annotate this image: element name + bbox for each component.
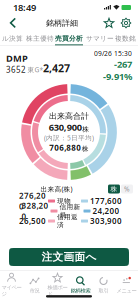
staticText: 株 bbox=[82, 145, 89, 153]
staticText: 東G* bbox=[27, 65, 43, 74]
staticText: 信用返済 bbox=[57, 213, 78, 229]
staticText: 市況 bbox=[29, 287, 39, 294]
staticText: 株 bbox=[110, 185, 117, 193]
staticText: 2,427 bbox=[43, 61, 70, 75]
staticText: DMP bbox=[6, 52, 28, 64]
button[interactable]: お気に入り bbox=[101, 15, 117, 31]
button[interactable]: ル決算 bbox=[2, 33, 23, 44]
button[interactable]: 戻る bbox=[3, 15, 23, 31]
staticText: -9.91% bbox=[103, 70, 132, 83]
staticText: 売買分析 bbox=[55, 34, 83, 43]
staticText: 3652 bbox=[6, 64, 26, 75]
staticText: 18:49 bbox=[13, 1, 36, 14]
staticText: ⌄ bbox=[45, 66, 51, 73]
button[interactable]: 注文画面へ bbox=[9, 248, 129, 266]
staticText: 株価ボード bbox=[47, 284, 67, 297]
staticText: 出来高合計 bbox=[49, 111, 89, 121]
staticText: (内訳：5日平均) bbox=[44, 133, 94, 142]
staticText: 複数銘 bbox=[115, 34, 136, 43]
staticText: 177,600 bbox=[90, 196, 122, 206]
staticText: 328,200 bbox=[21, 200, 48, 222]
staticText: 630,900 bbox=[49, 121, 82, 133]
button[interactable]: 銘柄検索 bbox=[69, 274, 92, 296]
button[interactable]: 売買分析 bbox=[55, 33, 83, 44]
staticText: 出来高(株) bbox=[40, 185, 72, 193]
staticText: 26,500 bbox=[19, 216, 46, 226]
button[interactable]: 株価ボード bbox=[46, 274, 69, 296]
button[interactable]: % bbox=[121, 184, 133, 193]
staticText: 銘柄検索 bbox=[70, 287, 90, 294]
staticText: ル決算 bbox=[2, 34, 23, 43]
staticText: 706,880 bbox=[49, 142, 81, 153]
button[interactable]: マイページ bbox=[0, 274, 23, 296]
staticText: サマリー bbox=[86, 34, 114, 43]
staticText: 信用新規 bbox=[59, 203, 80, 219]
button[interactable]: 取引 bbox=[92, 274, 115, 296]
staticText: 24,200 bbox=[92, 206, 119, 216]
staticText: 現物 bbox=[57, 197, 71, 205]
button[interactable]: サマリー bbox=[86, 33, 114, 44]
button[interactable]: 市況 bbox=[23, 274, 46, 296]
staticText: -267 bbox=[114, 58, 132, 70]
staticText: 注文画面へ bbox=[41, 250, 96, 263]
staticText: 276,200 bbox=[19, 190, 46, 212]
staticText: 09/26 15:30 bbox=[94, 49, 132, 58]
button[interactable]: メニュー bbox=[115, 274, 138, 296]
button[interactable]: 株 bbox=[108, 184, 120, 193]
staticText: % bbox=[124, 185, 130, 193]
staticText: 株主優待 bbox=[26, 34, 54, 43]
staticText: 303,900 bbox=[90, 216, 122, 226]
button[interactable]: 株主優待 bbox=[26, 33, 54, 44]
staticText: 銘柄詳細 bbox=[46, 18, 78, 28]
staticText: メニュー bbox=[116, 287, 136, 294]
staticText: マイページ bbox=[1, 284, 21, 297]
staticText: 取引 bbox=[98, 287, 108, 294]
button[interactable]: 複数銘 bbox=[115, 33, 136, 44]
staticText: 株 bbox=[82, 125, 89, 133]
button[interactable]: 設定 bbox=[117, 15, 135, 31]
